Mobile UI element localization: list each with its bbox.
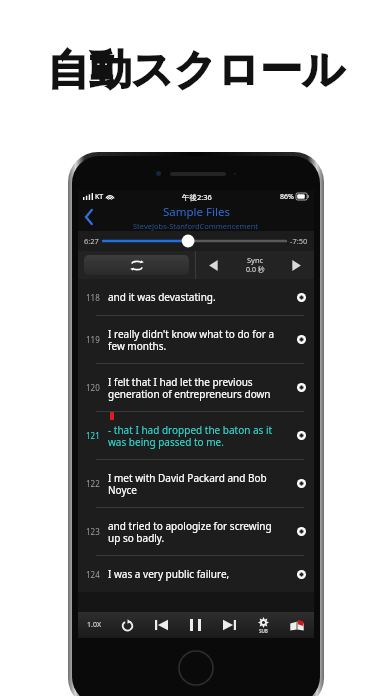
button[interactable]: Repeat <box>84 255 189 275</box>
button[interactable]: Add bookmark <box>288 412 314 459</box>
staticText: I met with David Packard and Bob Noyce <box>108 471 284 497</box>
staticText: KT <box>95 192 104 202</box>
button[interactable]: Rewind <box>114 612 140 638</box>
button[interactable]: Previous <box>148 612 174 638</box>
staticText: 自動スクロール <box>0 44 392 97</box>
button[interactable]: 1.0X <box>82 612 106 638</box>
button[interactable]: Seek <box>103 234 286 248</box>
button[interactable]: 119 <box>78 316 314 363</box>
button[interactable]: 123 <box>78 508 314 555</box>
staticText: 86% <box>280 192 294 202</box>
staticText: and tried to apologize for screwing up s… <box>108 519 284 545</box>
staticText: SUB <box>259 628 268 634</box>
staticText: 1.0X <box>87 620 101 630</box>
button[interactable]: Add bookmark <box>288 316 314 363</box>
button[interactable]: Add bookmark <box>288 508 314 555</box>
button[interactable]: Back <box>78 206 100 228</box>
staticText: SteveJobs-StanfordCommencement <box>133 221 259 231</box>
button[interactable]: 121 <box>78 412 314 459</box>
staticText: 午後2:36 <box>182 192 212 202</box>
button[interactable]: 118 <box>78 279 314 315</box>
button[interactable]: Next <box>216 612 242 638</box>
staticText: Sync <box>247 255 264 265</box>
staticText: 118 <box>86 292 100 303</box>
staticText: -7:50 <box>290 236 308 246</box>
button[interactable]: 122 <box>78 460 314 507</box>
button[interactable]: 120 <box>78 364 314 411</box>
staticText: and it was devastating. <box>108 290 284 304</box>
button[interactable]: Add bookmark <box>288 364 314 411</box>
staticText: 121 <box>86 430 100 441</box>
button[interactable]: Sync back <box>196 251 231 279</box>
button[interactable]: Add bookmark <box>288 279 314 315</box>
staticText: - that I had dropped the baton as it was… <box>108 423 284 449</box>
button[interactable]: Sync <box>231 251 279 279</box>
staticText: 120 <box>86 382 100 393</box>
button[interactable]: Dictionary <box>284 612 310 638</box>
button[interactable]: Pause <box>182 612 208 638</box>
button[interactable]: Subtitle settings <box>250 612 276 638</box>
staticText: 123 <box>86 526 100 537</box>
staticText: 6:27 <box>84 236 99 246</box>
button[interactable]: Sync forward <box>279 251 314 279</box>
button[interactable]: 124 <box>78 556 314 592</box>
staticText: 119 <box>86 334 100 345</box>
staticText: 124 <box>86 569 100 580</box>
staticText: 0.0 秒 <box>246 265 265 275</box>
staticText: I felt that I had let the previous gener… <box>108 375 284 401</box>
button[interactable]: Add bookmark <box>288 460 314 507</box>
staticText: Sample Files <box>163 204 230 220</box>
button[interactable]: Add bookmark <box>288 556 314 592</box>
staticText: I really didn't know what to do for a fe… <box>108 327 284 353</box>
staticText: I was a very public failure, <box>108 567 284 581</box>
staticText: 122 <box>86 478 100 489</box>
